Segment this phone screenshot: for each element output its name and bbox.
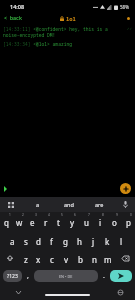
staticText: q: [4, 217, 9, 228]
button[interactable]: 8: [93, 212, 107, 231]
button[interactable]: 0: [121, 212, 135, 231]
staticText: u: [84, 217, 89, 228]
staticText: o: [112, 217, 117, 228]
button[interactable]: Send: [110, 270, 132, 282]
button[interactable]: Hide keyboard: [16, 291, 21, 294]
staticText: 3: [35, 213, 37, 217]
button[interactable]: n: [87, 249, 101, 267]
button[interactable]: Send: [120, 183, 131, 194]
staticText: m: [104, 254, 112, 265]
button[interactable]: 9: [107, 212, 121, 231]
staticText: r: [44, 217, 48, 228]
button[interactable]: Shift: [0, 249, 19, 267]
staticText: lol: [66, 15, 76, 22]
button[interactable]: 2: [13, 212, 26, 231]
staticText: ,: [27, 271, 29, 281]
button[interactable]: are: [84, 197, 115, 212]
staticText: t: [57, 217, 60, 228]
staticText: ?123: [7, 273, 18, 280]
staticText: c: [50, 254, 54, 265]
staticText: 4: [48, 213, 50, 217]
button[interactable]: m: [101, 249, 115, 267]
staticText: b: [78, 254, 83, 265]
staticText: < back: [4, 15, 23, 22]
button[interactable]: .: [99, 269, 109, 283]
button[interactable]: < back: [0, 14, 27, 23]
button[interactable]: Change keyboard: [118, 290, 123, 295]
staticText: s: [24, 236, 28, 247]
staticText: y: [70, 217, 75, 228]
button[interactable]: ,: [23, 269, 33, 283]
staticText: EN • DE: [59, 274, 73, 279]
staticText: j: [92, 236, 95, 247]
button[interactable]: and: [53, 197, 84, 212]
staticText: l: [120, 236, 123, 247]
staticText: a: [10, 236, 15, 247]
staticText: 1: [9, 213, 11, 217]
button[interactable]: 7: [79, 212, 93, 231]
button[interactable]: 5: [52, 212, 65, 231]
staticText: [14:33:11] <@confident> hey, this is a n…: [3, 26, 127, 39]
staticText: a: [36, 201, 40, 208]
staticText: x: [36, 254, 41, 265]
button[interactable]: Toolbar: [0, 197, 22, 212]
button[interactable]: Menu: [122, 15, 135, 22]
button[interactable]: a: [22, 197, 53, 212]
button[interactable]: g: [58, 231, 72, 249]
staticText: .: [103, 271, 105, 281]
button[interactable]: ?123: [3, 270, 22, 282]
button[interactable]: 1: [0, 212, 13, 231]
button[interactable]: s: [19, 231, 32, 249]
staticText: 14:08: [10, 3, 25, 10]
button[interactable]: Backspace: [115, 249, 135, 267]
staticText: ✓✓: [127, 26, 132, 31]
staticText: 5: [61, 213, 63, 217]
staticText: are: [95, 201, 104, 208]
staticText: k: [105, 236, 110, 247]
staticText: 6: [74, 213, 76, 217]
staticText: 9: [116, 213, 118, 217]
staticText: n: [92, 254, 97, 265]
button[interactable]: z: [19, 249, 32, 267]
button[interactable]: k: [100, 231, 114, 249]
button[interactable]: 4: [39, 212, 52, 231]
button[interactable]: Space: [34, 270, 98, 282]
staticText: [14:33:34] <@lol> amazing: [3, 41, 72, 47]
staticText: g: [63, 236, 68, 247]
button[interactable]: b: [73, 249, 87, 267]
staticText: z: [24, 254, 28, 265]
button[interactable]: c: [45, 249, 59, 267]
staticText: 2: [22, 213, 24, 217]
staticText: and: [64, 201, 74, 208]
button[interactable]: a: [6, 231, 19, 249]
staticText: 0: [130, 213, 132, 217]
staticText: v: [64, 254, 69, 265]
staticText: 7: [88, 213, 90, 217]
staticText: f: [50, 236, 53, 247]
staticText: i: [99, 217, 102, 228]
button[interactable]: h: [72, 231, 86, 249]
button[interactable]: Voice input: [115, 197, 135, 212]
button[interactable]: x: [32, 249, 45, 267]
staticText: e: [30, 217, 35, 228]
staticText: p: [126, 217, 131, 228]
staticText: w: [16, 217, 23, 228]
button[interactable]: d: [32, 231, 45, 249]
staticText: h: [77, 236, 82, 247]
button[interactable]: v: [59, 249, 73, 267]
staticText: d: [36, 236, 41, 247]
staticText: 58%: [120, 4, 129, 10]
button[interactable]: 3: [26, 212, 39, 231]
button[interactable]: f: [45, 231, 58, 249]
button[interactable]: l: [114, 231, 128, 249]
button[interactable]: j: [86, 231, 100, 249]
staticText: 8: [102, 213, 104, 217]
button[interactable]: 6: [65, 212, 79, 231]
